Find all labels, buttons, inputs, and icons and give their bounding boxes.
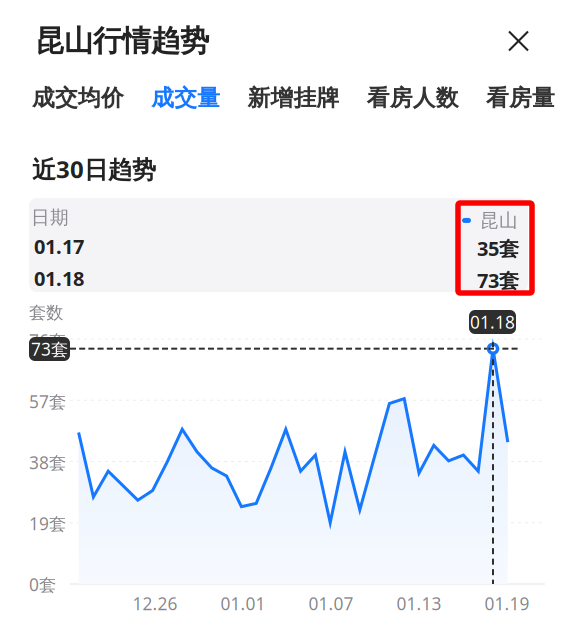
staticText: 01.13 — [396, 592, 441, 615]
staticText: 看房量 — [486, 84, 555, 112]
staticText: 01.07 — [308, 592, 353, 615]
staticText: 01.17 — [34, 233, 84, 260]
staticText: 38套 — [29, 451, 66, 474]
staticText: 01.01 — [220, 592, 265, 615]
staticText: 73套 — [31, 337, 68, 360]
button[interactable]: 看房人数 — [367, 79, 459, 117]
button[interactable]: 成交量 — [151, 79, 220, 117]
staticText: 12.26 — [132, 592, 177, 615]
button[interactable]: 关闭 — [502, 24, 535, 57]
staticText: 看房人数 — [367, 84, 459, 112]
staticText: 35套 — [477, 235, 519, 262]
staticText: 昆山行情趋势 — [35, 23, 209, 59]
button[interactable]: 成交均价 — [32, 79, 124, 117]
button[interactable]: 看房量 — [486, 79, 555, 117]
staticText: 01.18 — [470, 310, 515, 333]
staticText: 57套 — [29, 390, 66, 413]
staticText: 套数 — [29, 302, 63, 323]
staticText: 日期 — [31, 206, 69, 229]
staticText: 01.19 — [484, 592, 529, 615]
staticText: 76套 — [29, 329, 66, 352]
staticText: 近30日趋势 — [32, 153, 156, 185]
button[interactable]: 新增挂牌 — [247, 79, 339, 117]
staticText: 0套 — [29, 573, 56, 596]
staticText: 昆山 — [480, 209, 518, 232]
staticText: 19套 — [29, 512, 66, 535]
staticText: 成交量 — [151, 84, 220, 112]
staticText: 新增挂牌 — [247, 84, 339, 112]
staticText: 73套 — [477, 267, 519, 294]
staticText: 01.18 — [34, 265, 84, 292]
staticText: 成交均价 — [32, 84, 124, 112]
